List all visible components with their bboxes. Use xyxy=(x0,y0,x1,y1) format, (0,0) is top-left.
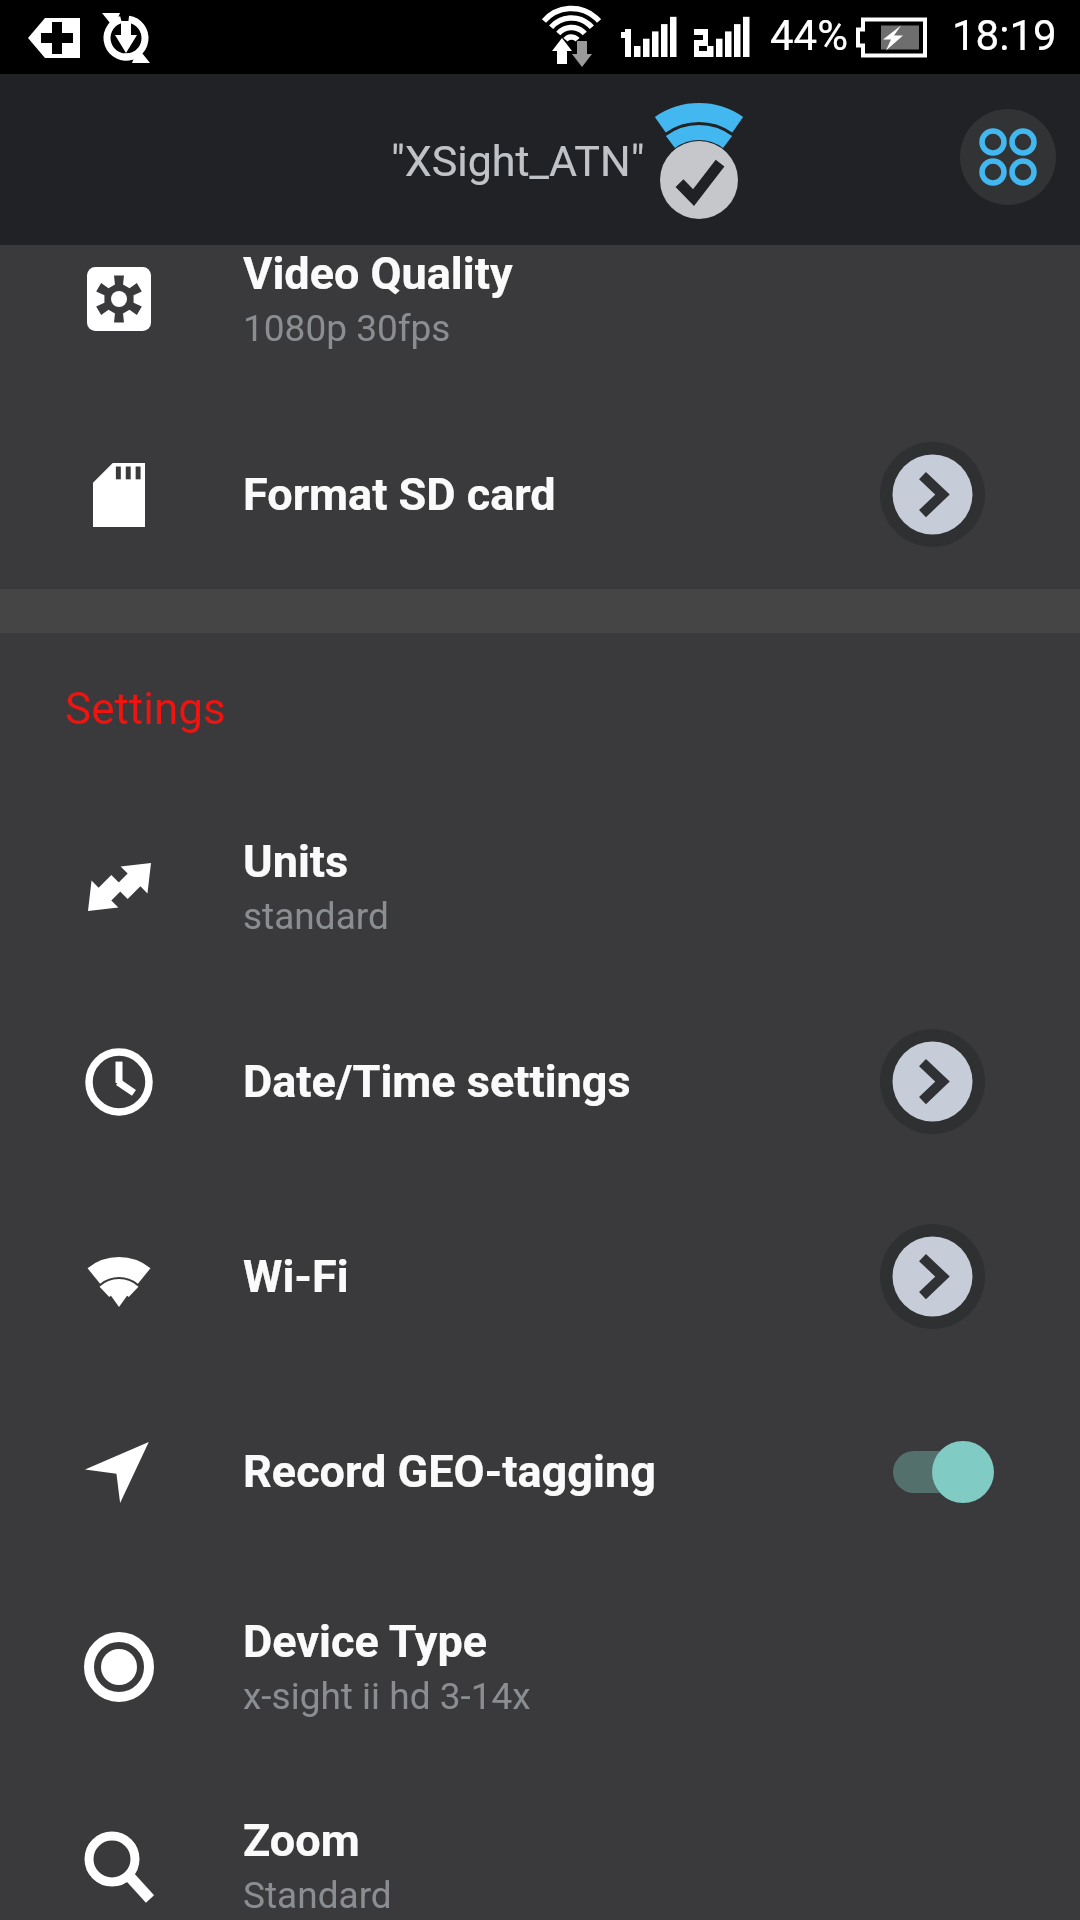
staticText: Date/Time settings xyxy=(243,1055,631,1108)
staticText: Format SD card xyxy=(243,468,556,521)
button[interactable]: Wi-Fi xyxy=(0,1179,1080,1374)
button[interactable]: Device Type xyxy=(0,1569,1080,1764)
staticText: Zoom xyxy=(243,1814,360,1867)
button[interactable]: Open Format SD card xyxy=(880,442,985,547)
staticText: Standard xyxy=(243,1874,392,1917)
staticText: Settings xyxy=(65,683,226,735)
button[interactable]: Toggle Record GEO-tagging xyxy=(893,1441,994,1503)
button[interactable]: Record GEO-tagging xyxy=(0,1374,1080,1569)
button[interactable]: Units xyxy=(0,789,1080,984)
staticText: Device Type xyxy=(243,1615,488,1668)
staticText: Record GEO-tagging xyxy=(243,1445,656,1498)
button[interactable]: Apps grid xyxy=(960,109,1056,205)
button[interactable]: Format SD card xyxy=(0,388,1080,583)
staticText: Video Quality xyxy=(243,247,513,300)
staticText: x-sight ii hd 3-14x xyxy=(243,1675,531,1718)
staticText: Wi-Fi xyxy=(243,1250,349,1303)
staticText: Units xyxy=(243,835,349,888)
button[interactable]: Open Date/Time settings xyxy=(880,1029,985,1134)
button[interactable]: Open Wi-Fi xyxy=(880,1224,985,1329)
button[interactable]: Date/Time settings xyxy=(0,984,1080,1179)
staticText: 18:19 xyxy=(952,11,1057,60)
staticText: "XSight_ATN" xyxy=(391,136,645,186)
staticText: 1080p 30fps xyxy=(243,307,451,350)
staticText: standard xyxy=(243,895,389,938)
button[interactable]: Zoom xyxy=(0,1764,1080,1920)
button[interactable]: Video Quality xyxy=(0,245,1080,388)
staticText: 44% xyxy=(770,11,848,60)
